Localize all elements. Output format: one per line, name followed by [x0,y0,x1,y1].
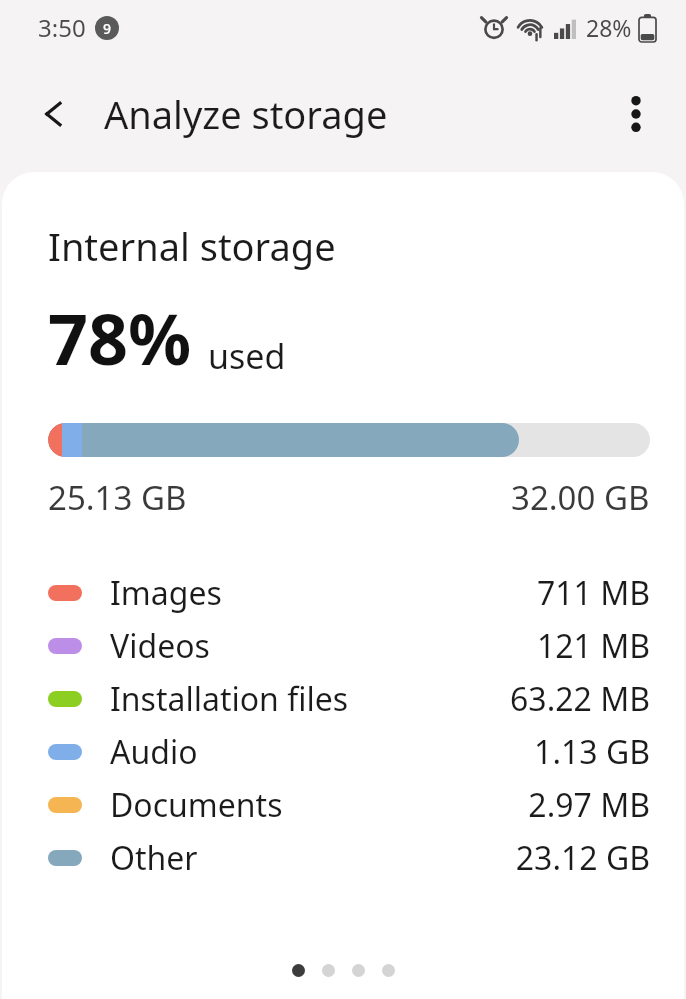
staticText: Videos [110,624,210,668]
staticText: 2.97 MB [528,783,650,827]
staticText: 25.13 GB [48,475,187,520]
staticText: Audio [110,730,198,774]
staticText: Installation files [110,677,349,721]
button[interactable]: Page 3 [352,964,365,977]
button[interactable]: Page 4 [382,964,395,977]
staticText: 3:50 [38,11,86,44]
staticText: 32.00 GB [511,475,650,520]
staticText: 28% [586,12,632,43]
staticText: 78% [48,290,192,385]
staticText: used [208,333,286,379]
button[interactable]: Page 1 [292,964,305,977]
staticText: 711 MB [536,571,650,615]
button[interactable]: Page 2 [322,964,335,977]
staticText: Analyze storage [104,88,388,140]
button[interactable]: Back [26,86,82,142]
staticText: 63.22 MB [510,677,650,721]
button[interactable]: Other [48,831,650,884]
staticText: 9 [103,19,112,38]
staticText: Images [110,571,222,615]
button[interactable]: Documents [48,778,650,831]
button[interactable]: Videos [48,619,650,672]
staticText: Other [110,836,198,880]
staticText: Documents [110,783,283,827]
staticText: 23.12 GB [515,836,650,880]
button[interactable]: Audio [48,725,650,778]
button[interactable]: Installation files [48,672,650,725]
staticText: 1.13 GB [534,730,650,774]
staticText: Internal storage [48,220,336,272]
button[interactable]: Images [48,566,650,619]
staticText: 121 MB [536,624,650,668]
button[interactable]: More options [608,86,664,142]
